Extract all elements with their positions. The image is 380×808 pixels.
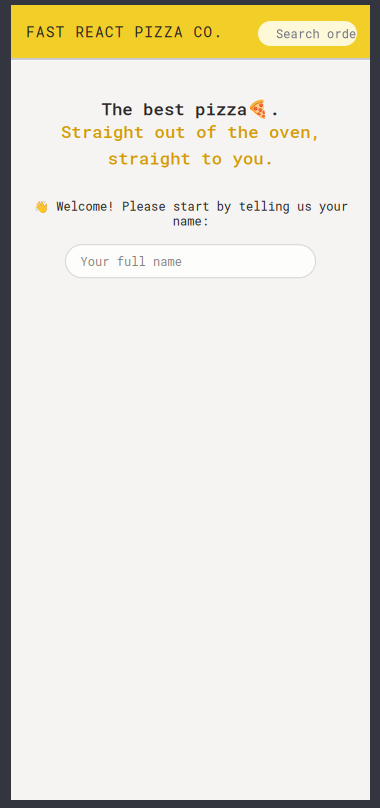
staticText: 👋 Welcome! Please start by telling us yo… xyxy=(33,198,348,229)
staticText: Your full name xyxy=(80,253,181,269)
staticText: The best pizza🍕. xyxy=(101,97,279,120)
staticText: Search order # xyxy=(276,26,378,41)
staticText: FAST REACT PIZZA CO. xyxy=(26,22,222,41)
button[interactable]: Search order # xyxy=(258,17,357,46)
staticText: Straight out of the oven, straight to yo… xyxy=(61,120,320,169)
button[interactable]: Your full name xyxy=(65,245,315,278)
